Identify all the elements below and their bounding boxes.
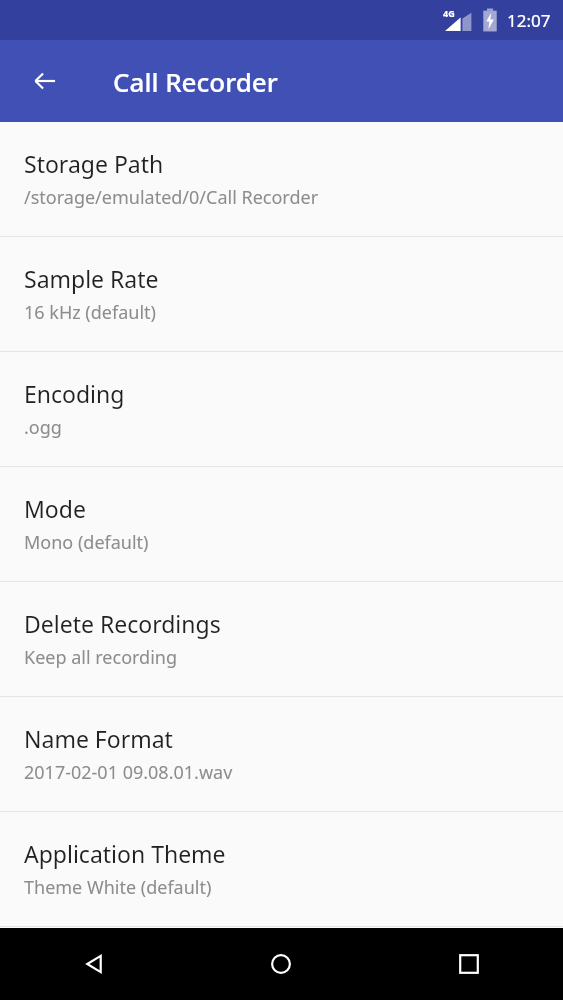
staticText: Application Theme	[24, 838, 226, 869]
staticText: 2017-02-01 09.08.01.wav	[24, 760, 233, 785]
staticText: .ogg	[24, 415, 62, 440]
staticText: Encoding	[24, 378, 125, 409]
button[interactable]: Home	[187, 928, 375, 1000]
button[interactable]: Name Format	[0, 697, 563, 811]
staticText: Keep all recording	[24, 645, 177, 670]
staticText: Storage Path	[24, 148, 164, 179]
button[interactable]: Encoding	[0, 352, 563, 466]
staticText: Mode	[24, 493, 86, 524]
button[interactable]: Application Theme	[0, 812, 563, 926]
button[interactable]: Back	[0, 928, 187, 1000]
staticText: Call Recorder	[113, 64, 278, 99]
staticText: 4G	[443, 7, 455, 19]
staticText: /storage/emulated/0/Call Recorder	[24, 185, 319, 210]
staticText: Mono (default)	[24, 530, 149, 555]
button[interactable]: Delete Recordings	[0, 582, 563, 696]
button[interactable]: Back	[21, 57, 69, 105]
staticText: 12:07	[507, 9, 551, 32]
staticText: 16 kHz (default)	[24, 300, 156, 325]
staticText: Delete Recordings	[24, 608, 221, 639]
staticText: Theme White (default)	[24, 875, 212, 900]
button[interactable]: Storage Path	[0, 122, 563, 236]
staticText: Sample Rate	[24, 263, 159, 294]
staticText: Name Format	[24, 723, 173, 754]
button[interactable]: Mode	[0, 467, 563, 581]
button[interactable]: Recent apps	[375, 928, 563, 1000]
button[interactable]: Sample Rate	[0, 237, 563, 351]
